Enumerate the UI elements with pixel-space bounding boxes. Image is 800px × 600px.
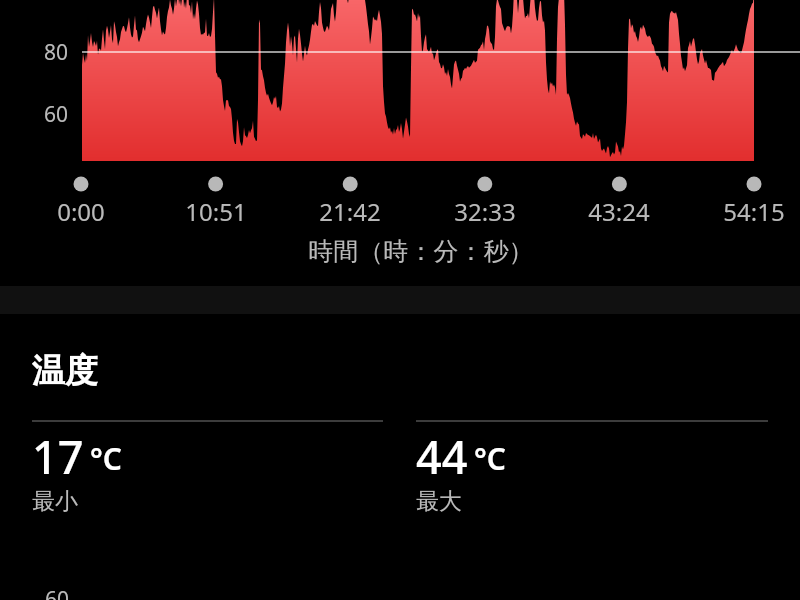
staticText: 43:24 bbox=[549, 195, 689, 228]
staticText: °C bbox=[474, 438, 506, 479]
button[interactable]: 17 bbox=[32, 420, 383, 516]
staticText: 60 bbox=[44, 100, 69, 129]
staticText: 最小 bbox=[32, 487, 78, 516]
staticText: 80 bbox=[44, 38, 69, 67]
staticText: 17 bbox=[32, 426, 84, 487]
staticText: 32:33 bbox=[415, 195, 555, 228]
staticText: 最大 bbox=[416, 487, 462, 516]
button[interactable]: Heart rate chart bbox=[0, 0, 800, 286]
staticText: 21:42 bbox=[280, 195, 420, 228]
staticText: °C bbox=[90, 438, 122, 479]
staticText: 54:15 bbox=[684, 195, 800, 228]
button[interactable]: 44 bbox=[416, 420, 768, 516]
staticText: 温度 bbox=[32, 350, 98, 392]
staticText: 0:00 bbox=[11, 195, 151, 228]
staticText: 44 bbox=[416, 426, 468, 487]
staticText: 時間（時：分：秒） bbox=[21, 236, 800, 267]
staticText: 10:51 bbox=[146, 195, 286, 228]
staticText: 60 bbox=[45, 585, 70, 600]
